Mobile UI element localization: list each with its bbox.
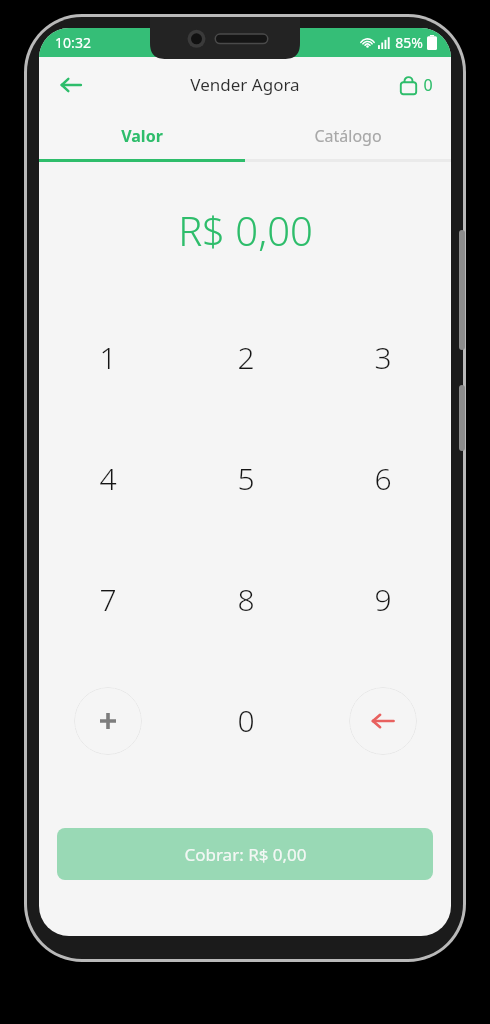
staticText: R$ 0,00 — [178, 203, 313, 257]
staticText: 0 — [237, 700, 255, 741]
button[interactable]: 5 — [177, 418, 314, 539]
staticText: 7 — [99, 579, 117, 620]
staticText: 85% — [395, 33, 423, 52]
staticText: 9 — [374, 579, 392, 620]
staticText: 0 — [423, 74, 433, 96]
staticText: Cobrar: R$ 0,00 — [184, 843, 307, 866]
staticText: 6 — [374, 458, 392, 499]
button[interactable]: Voltar — [47, 61, 95, 109]
button[interactable]: 8 — [177, 539, 314, 660]
staticText: 2 — [237, 337, 255, 378]
button[interactable]: Valor — [39, 112, 245, 159]
button[interactable]: 1 — [39, 297, 177, 418]
button[interactable]: 0 — [177, 660, 314, 781]
button[interactable]: 7 — [39, 539, 177, 660]
button[interactable]: 6 — [314, 418, 451, 539]
button[interactable]: Catálogo — [245, 112, 451, 159]
staticText: 4 — [99, 458, 117, 499]
staticText: 3 — [374, 337, 392, 378]
button[interactable]: Carrinho — [396, 70, 437, 100]
button[interactable]: Adicionar — [74, 687, 142, 755]
staticText: Valor — [121, 125, 163, 147]
staticText: 8 — [237, 579, 255, 620]
button[interactable]: 9 — [314, 539, 451, 660]
staticText: 5 — [237, 458, 255, 499]
button[interactable]: Cobrar: R$ 0,00 — [57, 828, 433, 880]
staticText: 1 — [99, 337, 117, 378]
staticText: Catálogo — [314, 125, 382, 147]
staticText: Vender Agora — [190, 73, 300, 96]
button[interactable]: Apagar — [349, 687, 417, 755]
button[interactable]: 4 — [39, 418, 177, 539]
staticText: 10:32 — [55, 33, 91, 52]
button[interactable]: 2 — [177, 297, 314, 418]
button[interactable]: 3 — [314, 297, 451, 418]
